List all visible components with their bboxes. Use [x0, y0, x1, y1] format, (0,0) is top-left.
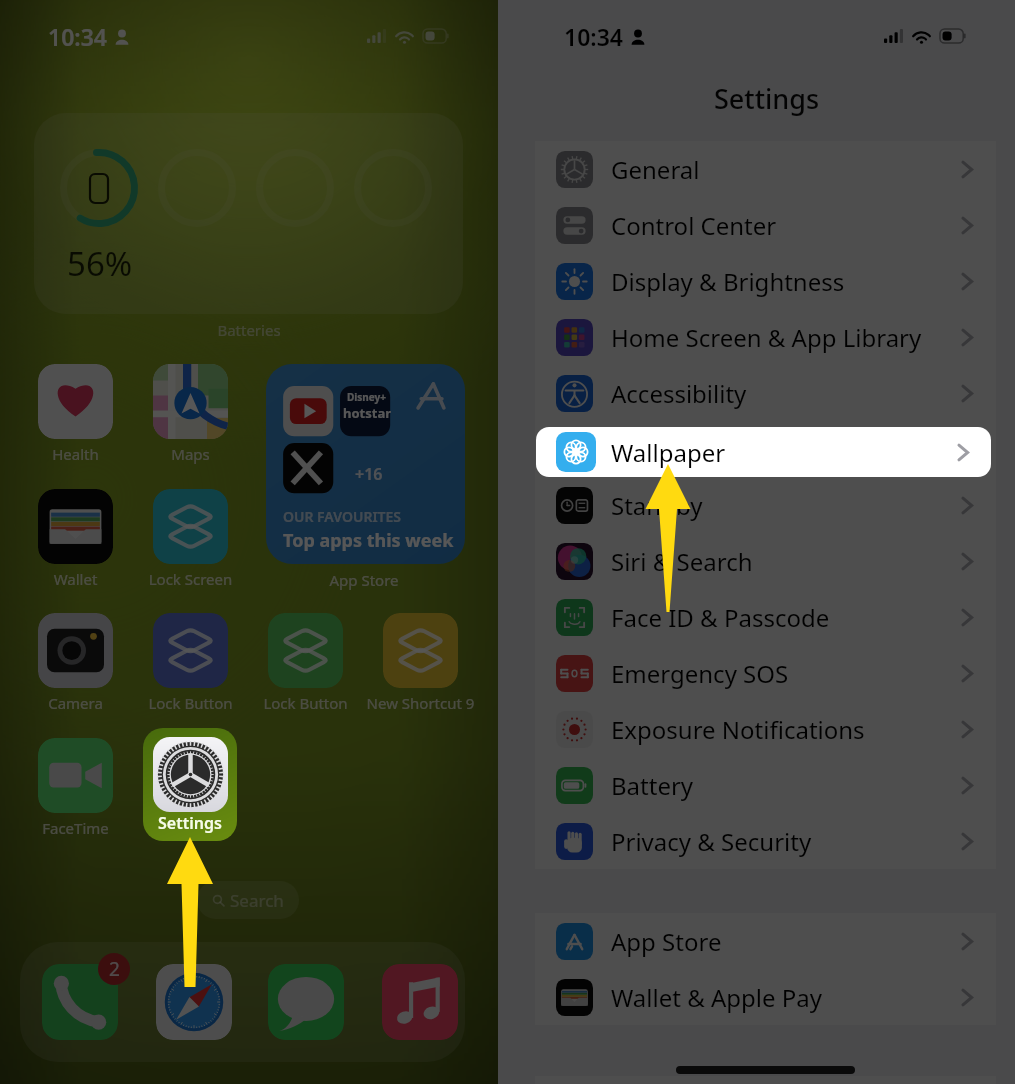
- staticText: Maps: [133, 444, 248, 464]
- button[interactable]: New Shortcut 9: [383, 613, 458, 688]
- staticText: Control Center: [611, 209, 777, 242]
- button[interactable]: Exposure Notifications: [535, 701, 996, 757]
- button[interactable]: Safari: [156, 964, 232, 1040]
- button[interactable]: General: [535, 141, 996, 197]
- button[interactable]: App Store: [535, 913, 996, 969]
- staticText: Wallpaper: [611, 436, 726, 469]
- button[interactable]: Maps: [153, 364, 228, 439]
- staticText: Siri & Search: [611, 545, 753, 578]
- staticText: Face ID & Passcode: [611, 601, 830, 634]
- button[interactable]: Camera: [38, 613, 113, 688]
- staticText: Accessibility: [611, 377, 747, 410]
- button[interactable]: Lock Button: [268, 613, 343, 688]
- button[interactable]: Privacy & Security: [535, 813, 996, 869]
- staticText: 2: [109, 956, 120, 982]
- button[interactable]: Home Screen & App Library: [535, 309, 996, 365]
- button[interactable]: Music: [382, 964, 458, 1040]
- staticText: Camera: [18, 693, 133, 713]
- staticText: Top apps this week: [283, 528, 454, 553]
- button[interactable]: Phone: [42, 964, 118, 1040]
- button[interactable]: Search: [197, 881, 299, 919]
- staticText: Privacy & Security: [611, 825, 812, 858]
- staticText: FaceTime: [18, 818, 133, 838]
- staticText: New Shortcut 9: [363, 693, 478, 713]
- button[interactable]: Wallet: [38, 489, 113, 564]
- staticText: App Store: [611, 925, 722, 958]
- staticText: Disney+: [347, 390, 387, 404]
- button[interactable]: Emergency SOS: [535, 645, 996, 701]
- staticText: Settings: [508, 80, 1015, 117]
- staticText: Lock Button: [248, 693, 363, 713]
- button[interactable]: Wallpaper: [536, 427, 991, 477]
- button[interactable]: Face ID & Passcode: [535, 589, 996, 645]
- staticText: Wallet: [18, 569, 133, 589]
- staticText: 10:34: [564, 21, 623, 52]
- button[interactable]: Accessibility: [535, 365, 996, 421]
- staticText: Lock Button: [133, 693, 248, 713]
- staticText: Settings: [158, 812, 222, 834]
- button[interactable]: Wallet & Apple Pay: [535, 969, 996, 1025]
- button[interactable]: FaceTime: [38, 738, 113, 813]
- staticText: General: [611, 153, 700, 186]
- staticText: Battery: [611, 769, 694, 802]
- button[interactable]: App Store widget: [266, 364, 465, 564]
- button[interactable]: Health: [38, 364, 113, 439]
- staticText: hotstar: [343, 404, 391, 422]
- staticText: Wallet & Apple Pay: [611, 981, 822, 1014]
- button[interactable]: Standby: [535, 477, 996, 533]
- staticText: Search: [230, 889, 284, 912]
- button[interactable]: Batteries widget: [34, 113, 463, 314]
- staticText: Emergency SOS: [611, 657, 789, 690]
- button[interactable]: Battery: [535, 757, 996, 813]
- staticText: Display & Brightness: [611, 265, 845, 298]
- staticText: Lock Screen: [133, 569, 248, 589]
- button[interactable]: Lock Button: [153, 613, 228, 688]
- button[interactable]: Display & Brightness: [535, 253, 996, 309]
- button[interactable]: Messages: [268, 964, 344, 1040]
- button[interactable]: Lock Screen: [153, 489, 228, 564]
- button[interactable]: Settings: [143, 728, 237, 841]
- staticText: Batteries: [0, 320, 498, 340]
- staticText: +16: [355, 463, 383, 485]
- staticText: OUR FAVOURITES: [283, 507, 402, 526]
- staticText: Exposure Notifications: [611, 713, 865, 746]
- staticText: Health: [18, 444, 133, 464]
- staticText: 10:34: [48, 21, 107, 52]
- staticText: App Store: [266, 570, 462, 590]
- button[interactable]: Siri & Search: [535, 533, 996, 589]
- staticText: Wallpaper: [611, 433, 726, 466]
- button[interactable]: Control Center: [535, 197, 996, 253]
- staticText: Standby: [611, 489, 703, 522]
- staticText: Home Screen & App Library: [611, 321, 922, 354]
- button[interactable]: Wallpaper: [535, 421, 996, 477]
- staticText: 56%: [67, 241, 133, 286]
